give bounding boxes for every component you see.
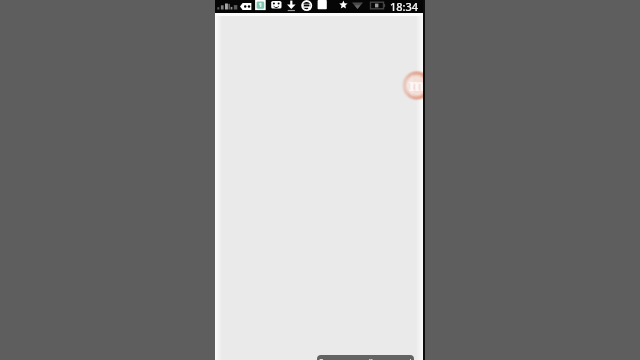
staticText: m (409, 74, 423, 96)
button[interactable]: Screen recording started (317, 355, 414, 360)
button[interactable]: Screen recorder (401, 70, 423, 101)
staticText: Screen recording started (319, 357, 412, 360)
staticText: 18:34 (390, 0, 419, 12)
